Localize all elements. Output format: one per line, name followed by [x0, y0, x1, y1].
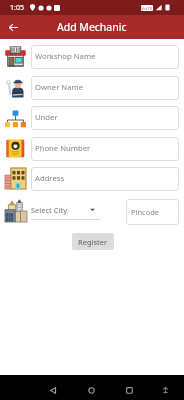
button[interactable]: Address	[31, 167, 179, 191]
button[interactable]: Workshop Name	[31, 45, 179, 69]
staticText: Address	[35, 173, 65, 183]
button[interactable]: Register	[72, 233, 114, 250]
staticText: 1:05	[10, 3, 24, 13]
staticText: Add Mechanic	[57, 20, 127, 34]
button[interactable]: Pincode	[126, 199, 179, 225]
button[interactable]: Owner Name	[31, 76, 179, 100]
button[interactable]: Recent apps	[121, 382, 138, 399]
button[interactable]: Select City	[31, 203, 100, 220]
staticText: VoLTE	[141, 6, 153, 11]
staticText: Owner Name	[35, 82, 83, 92]
button[interactable]: Change keyboard	[157, 382, 174, 399]
staticText: Pincode	[131, 207, 160, 217]
staticText: Under	[35, 112, 58, 122]
staticText: Phone Number	[35, 143, 91, 153]
button[interactable]: Phone Number	[31, 137, 179, 161]
staticText: Register	[78, 237, 108, 247]
button[interactable]: Under	[31, 106, 179, 130]
staticText: Workshop Name	[35, 51, 96, 61]
button[interactable]: Back	[5, 19, 21, 35]
button[interactable]: Back	[45, 382, 62, 399]
button[interactable]: Home	[83, 382, 100, 399]
staticText: Select City	[31, 205, 67, 215]
